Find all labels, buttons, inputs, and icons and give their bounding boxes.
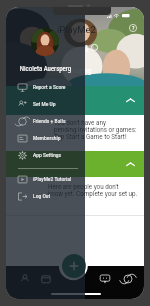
button[interactable]: Log Out [6,188,85,205]
staticText: know yet. Complete your set up. [48,190,138,197]
button[interactable]: Membership [6,130,85,147]
staticText: Report a Score [33,84,66,91]
staticText: 1 [84,44,90,55]
button[interactable]: Collapse section [6,86,144,115]
button[interactable]: Games [117,270,139,288]
staticText: is playing [65,67,92,74]
button[interactable]: Profile [14,270,36,288]
staticText: Friends + Balls [33,118,66,125]
staticText: App Settings [33,152,62,159]
staticText: ? [132,25,135,31]
staticText: Here are people you don't [48,183,119,190]
button[interactable]: App Settings [6,147,85,164]
button[interactable]: Help [129,24,137,32]
staticText: Nicoleta Auersperg [6,65,85,73]
button[interactable]: Friends + Balls [6,113,85,130]
staticText: Membership [33,135,61,142]
button[interactable]: Collapse section [6,151,144,177]
button[interactable]: Start a game [62,254,86,278]
button[interactable]: Set Me Up [6,96,85,113]
button[interactable]: Schedule [35,270,57,288]
staticText: Tap Start a Game to Start! [54,133,127,140]
staticText: iPlayMe2 Tutorial [33,176,72,183]
staticText: iPlayMe2 [57,24,96,35]
staticText: You don't have any [54,119,106,126]
staticText: Set Me Up [33,101,56,108]
button[interactable]: iPlayMe2 Tutorial [6,171,85,188]
staticText: pending invitations or games: [54,126,137,133]
staticText: Log Out [33,193,51,200]
button[interactable]: Report a Score [6,79,85,96]
button[interactable]: Messages [94,270,116,288]
